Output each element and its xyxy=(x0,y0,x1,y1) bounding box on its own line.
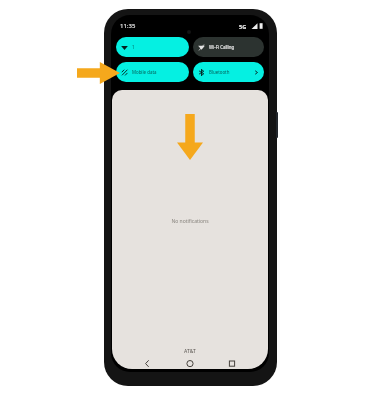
button[interactable]: Mobile data xyxy=(116,62,189,82)
staticText: 1 xyxy=(132,44,184,50)
staticText: No notifications xyxy=(112,218,268,225)
button[interactable]: Home xyxy=(176,358,204,369)
staticText: Mobile data xyxy=(132,69,184,75)
staticText: Bluetooth xyxy=(209,69,254,75)
staticText: AT&T xyxy=(112,348,268,355)
button[interactable]: Wi-Fi Calling xyxy=(193,37,264,57)
button[interactable]: Recent apps xyxy=(218,358,246,369)
staticText: 5G xyxy=(239,23,247,30)
staticText: Wi-Fi Calling xyxy=(209,44,259,50)
staticText: 11:35 xyxy=(120,22,136,30)
button[interactable]: Back xyxy=(133,358,161,369)
button[interactable]: Wi-Fi xyxy=(116,37,189,57)
button[interactable]: Power button xyxy=(276,112,278,138)
button[interactable]: Bluetooth xyxy=(193,62,264,82)
